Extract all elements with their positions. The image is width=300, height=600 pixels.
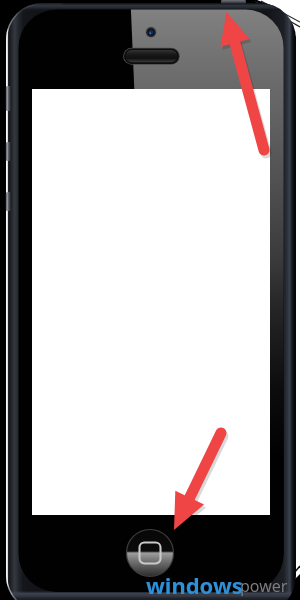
staticText: power	[240, 575, 288, 597]
staticText: windows	[146, 570, 243, 600]
